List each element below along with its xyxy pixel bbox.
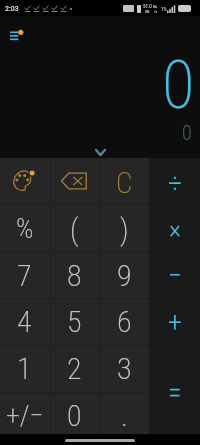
staticText: ÷ [168,167,182,200]
staticText: − [168,259,182,292]
button[interactable]: 5 [49,296,99,343]
staticText: . [121,398,128,433]
staticText: GB [145,9,150,14]
button[interactable]: 0 [49,390,99,437]
button[interactable]: − [149,250,200,297]
button[interactable]: 6 [99,296,149,343]
button[interactable]: . [99,390,149,437]
button[interactable]: Menu [6,22,26,44]
staticText: 0 [182,121,192,144]
staticText: 1% [161,6,167,12]
staticText: 3 [117,351,132,386]
button[interactable]: % [0,204,49,250]
button[interactable]: ( [49,204,99,250]
staticText: 7 [17,258,32,293]
staticText: 2 [67,351,82,386]
staticText: 0 [162,46,195,125]
staticText: = [168,376,182,409]
staticText: % [16,213,34,245]
button[interactable]: = [149,344,200,437]
staticText: 0 [67,398,82,433]
staticText: /s [154,9,158,14]
staticText: Kb [153,4,158,9]
button[interactable]: Themes [0,158,49,204]
staticText: ( [70,212,79,247]
button[interactable]: 3 [99,343,149,390]
button[interactable]: C [99,158,149,204]
staticText: +/− [6,399,44,432]
staticText: 6 [117,304,132,339]
button[interactable]: ÷ [149,158,200,204]
staticText: + [168,306,182,339]
staticText: 9 [117,258,132,293]
button[interactable]: 2 [49,343,99,390]
other: Backspace [61,172,87,190]
button[interactable]: 9 [99,250,149,296]
staticText: × [169,214,181,244]
staticText: C [116,166,133,200]
button[interactable]: +/− [0,390,49,437]
staticText: 4 [17,304,32,339]
button[interactable]: + [149,297,200,344]
staticText: 5 [67,304,82,339]
button[interactable]: 1 [0,343,49,390]
button[interactable]: 8 [49,250,99,296]
other: Themes [14,170,40,192]
button[interactable]: × [149,204,200,250]
button[interactable]: 4 [0,296,49,343]
button[interactable]: ) [99,204,149,250]
button[interactable]: 7 [0,250,49,296]
staticText: 8 [67,258,82,293]
staticText: 2:03 [5,4,19,13]
staticText: 1 [17,351,32,386]
button[interactable]: Backspace [49,158,99,204]
staticText: 51.0 [143,3,152,9]
staticText: ) [120,212,129,247]
button[interactable]: Expand history [95,150,106,155]
